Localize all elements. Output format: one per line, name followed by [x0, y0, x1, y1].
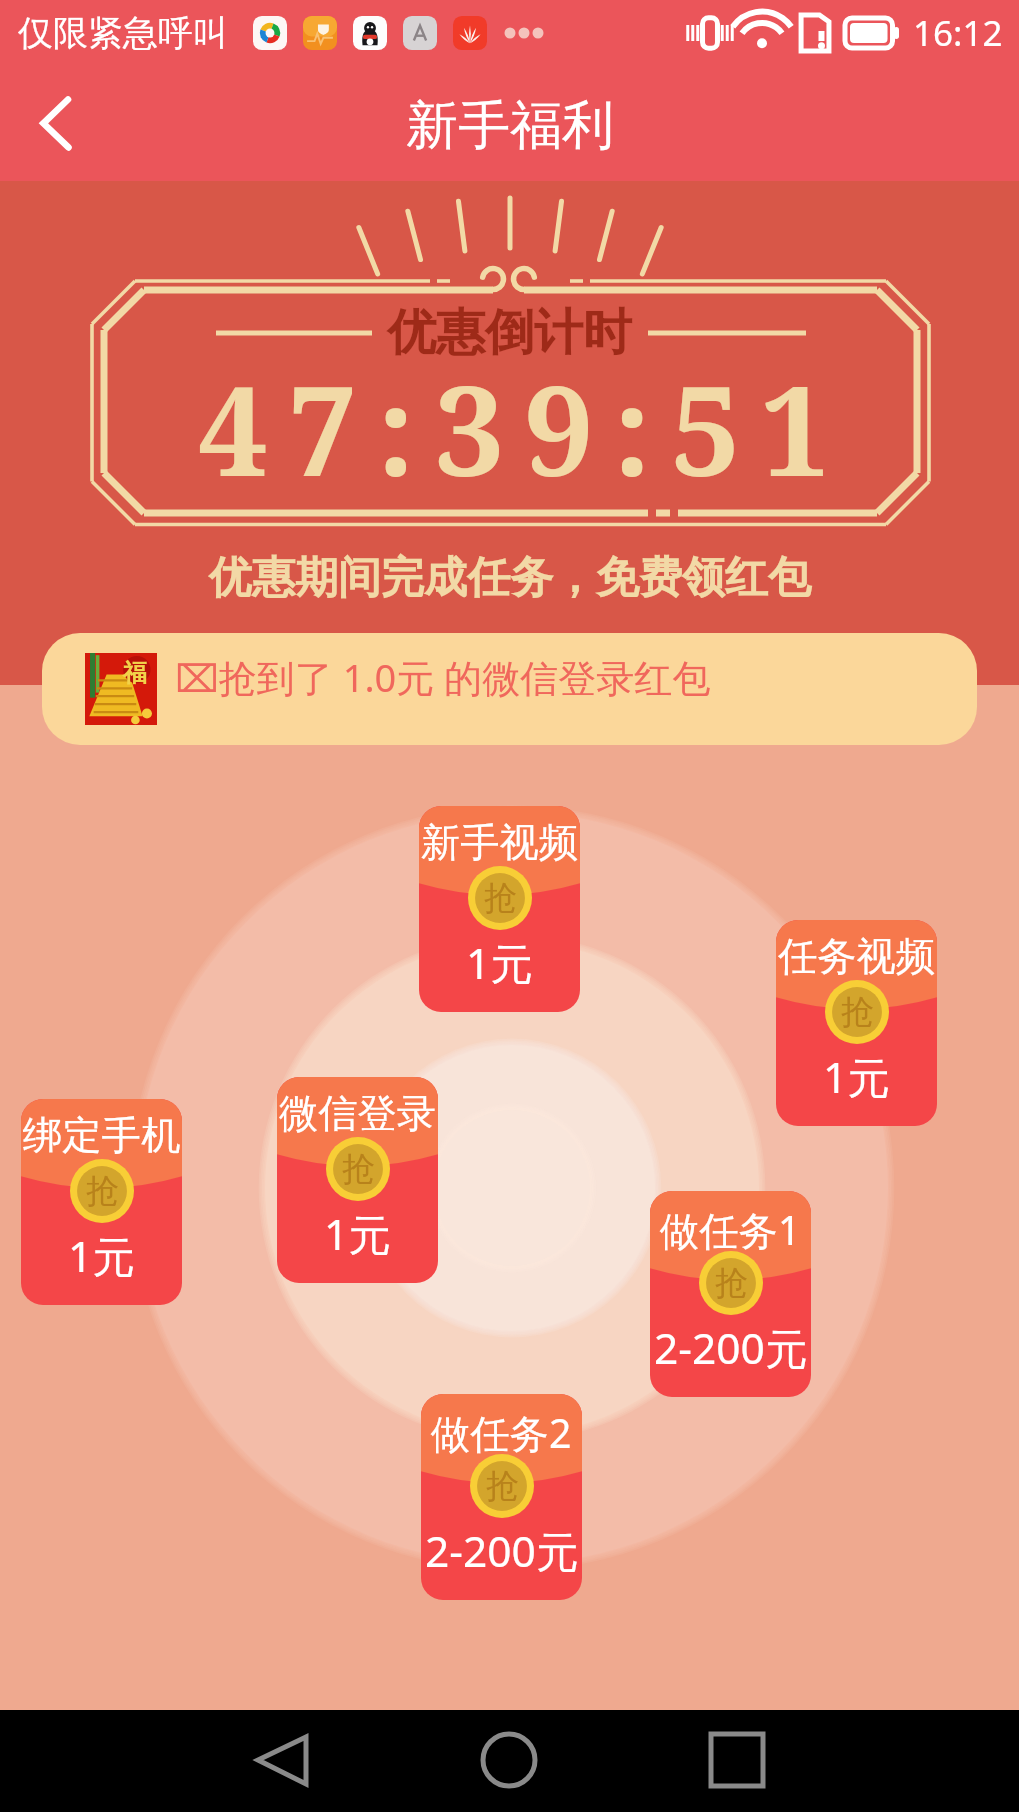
staticText: 1元 — [466, 934, 533, 992]
button[interactable]: 做任务2 — [421, 1394, 582, 1600]
staticText: 优惠期间完成任务，免费领红包 — [209, 551, 811, 605]
button[interactable]: Recents — [697, 1720, 777, 1800]
staticText: 福 — [123, 658, 147, 688]
button[interactable]: 福 — [42, 633, 977, 745]
button[interactable]: Back — [242, 1720, 322, 1800]
staticText: 1元 — [324, 1205, 391, 1263]
staticText: 抢 — [841, 991, 874, 1033]
staticText: 抢 — [715, 1262, 748, 1304]
staticText: 新手福利 — [406, 93, 614, 159]
staticText: 抢 — [486, 1465, 519, 1507]
staticText: 2-200元 — [425, 1522, 579, 1580]
staticText: 抢 — [342, 1148, 375, 1190]
button[interactable]: 任务视频 — [776, 920, 937, 1126]
button[interactable]: Back — [12, 78, 102, 168]
staticText: 新手视频 — [421, 818, 579, 868]
staticText: 47:39:51 — [198, 343, 850, 512]
button[interactable]: 微信登录 — [277, 1077, 438, 1283]
button[interactable]: 绑定手机 — [21, 1099, 182, 1305]
staticText: 2-200元 — [654, 1319, 808, 1377]
staticText: 仅限紧急呼叫 — [18, 11, 228, 55]
staticText: 抢 — [86, 1170, 119, 1212]
staticText: 绑定手机 — [23, 1111, 181, 1161]
button[interactable]: 做任务1 — [650, 1191, 811, 1397]
button[interactable]: Home — [469, 1720, 549, 1800]
staticText: 做任务1 — [660, 1203, 801, 1257]
staticText: 1元 — [68, 1227, 135, 1285]
staticText: 抢 — [484, 877, 517, 919]
button[interactable]: 新手视频 — [419, 806, 580, 1012]
staticText: ⌧抢到了 1.0元 的微信登录红包 — [175, 651, 711, 703]
staticText: 任务视频 — [778, 932, 936, 982]
staticText: 优惠倒计时 — [387, 302, 632, 364]
staticText: 做任务2 — [431, 1406, 572, 1460]
staticText: 微信登录 — [279, 1089, 437, 1139]
staticText: 1元 — [823, 1048, 890, 1106]
staticText: 16:12 — [913, 9, 1003, 57]
